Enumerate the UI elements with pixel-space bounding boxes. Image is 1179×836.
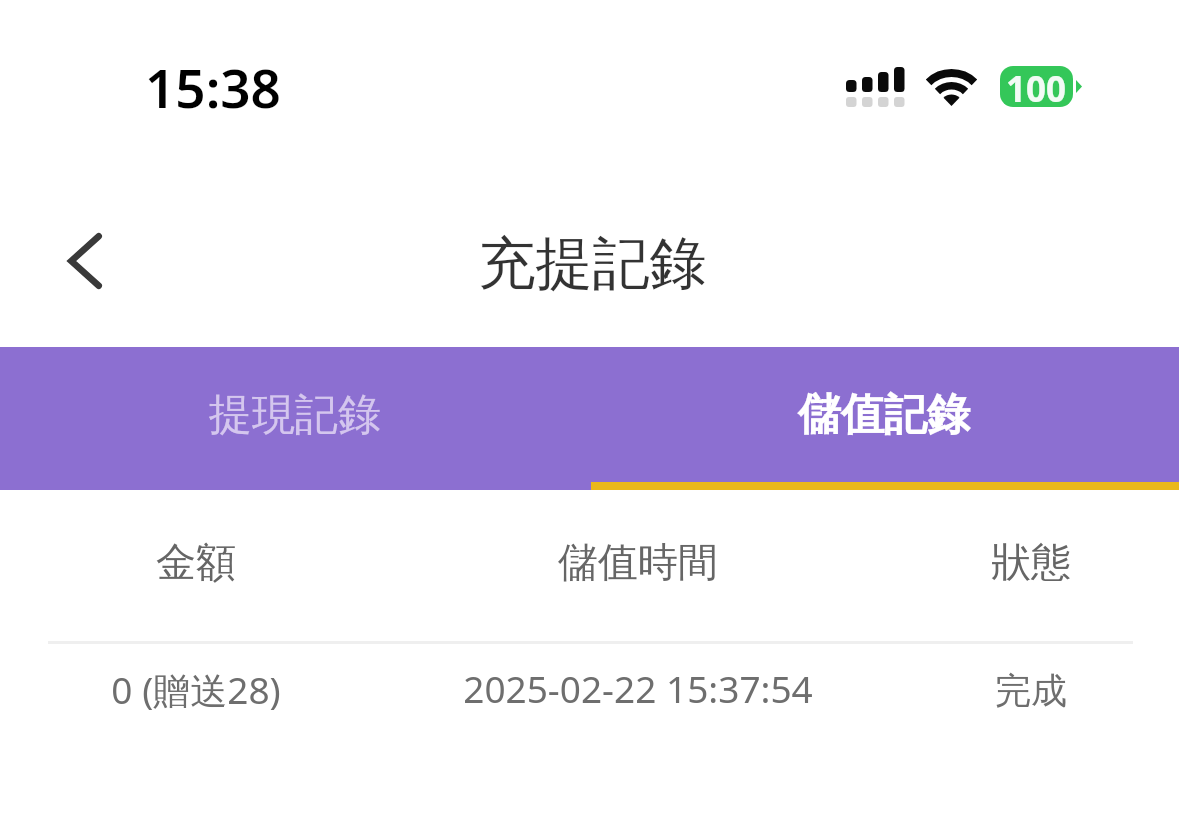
button[interactable]: 0 (贈送28) — [0, 644, 1179, 742]
staticText: 儲值記錄 — [798, 388, 970, 442]
staticText: 充提記錄 — [3, 228, 1179, 300]
button[interactable]: 提現記錄 — [0, 347, 589, 490]
staticText: 2025-02-22 15:37:54 — [238, 663, 1038, 713]
staticText: 完成 — [631, 668, 1179, 713]
staticText: 0 (贈送28) — [0, 664, 596, 715]
staticText: 提現記錄 — [209, 388, 381, 442]
staticText: 100 — [1006, 66, 1067, 106]
button[interactable]: 儲值記錄 — [589, 347, 1179, 490]
button[interactable]: Back — [37, 213, 133, 309]
staticText: 15:38 — [145, 51, 281, 123]
staticText: 儲值時間 — [238, 537, 1038, 587]
staticText: 金額 — [0, 537, 596, 587]
staticText: 狀態 — [631, 537, 1179, 587]
